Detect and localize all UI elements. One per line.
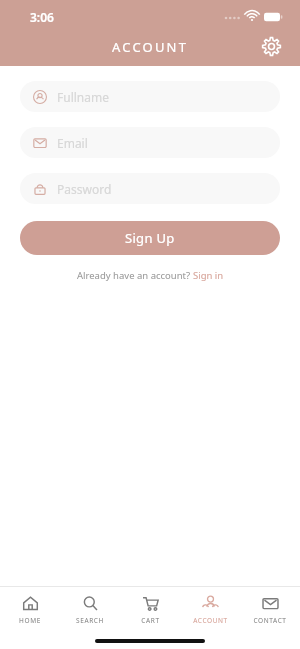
button[interactable]: Sign in	[193, 269, 224, 282]
button[interactable]: HOME	[0, 595, 60, 625]
button[interactable]: CART	[120, 595, 180, 625]
button[interactable]: Settings	[256, 31, 286, 61]
button[interactable]: ACCOUNT	[180, 595, 240, 625]
staticText: CART	[141, 616, 160, 625]
staticText: Sign Up	[125, 229, 175, 247]
staticText: 3:06	[30, 9, 54, 25]
staticText: Password	[57, 181, 112, 197]
staticText: ACCOUNT	[193, 616, 228, 625]
button[interactable]: Password	[20, 173, 280, 204]
button[interactable]: Fullname	[20, 81, 280, 112]
button[interactable]: Sign Up	[20, 221, 280, 255]
staticText: Already have an account?	[77, 269, 193, 282]
staticText: ACCOUNT	[112, 38, 189, 56]
staticText: SEARCH	[76, 616, 104, 625]
staticText: CONTACT	[253, 616, 287, 625]
button[interactable]: SEARCH	[60, 595, 120, 625]
staticText: HOME	[19, 616, 41, 625]
button[interactable]: Email	[20, 127, 280, 158]
staticText: Fullname	[57, 89, 109, 105]
staticText: Sign in	[193, 269, 224, 282]
staticText: Email	[57, 135, 88, 151]
button[interactable]: CONTACT	[240, 595, 300, 625]
